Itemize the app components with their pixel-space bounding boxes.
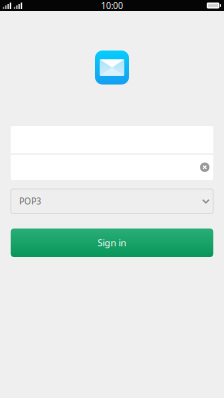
staticText: 10:00 bbox=[101, 0, 123, 11]
button[interactable]: Sign in bbox=[11, 228, 213, 257]
staticText: POP3 bbox=[19, 195, 41, 207]
button[interactable]: Clear text bbox=[196, 159, 213, 176]
staticText: Sign in bbox=[97, 236, 126, 249]
button[interactable]: POP3 bbox=[11, 189, 213, 213]
